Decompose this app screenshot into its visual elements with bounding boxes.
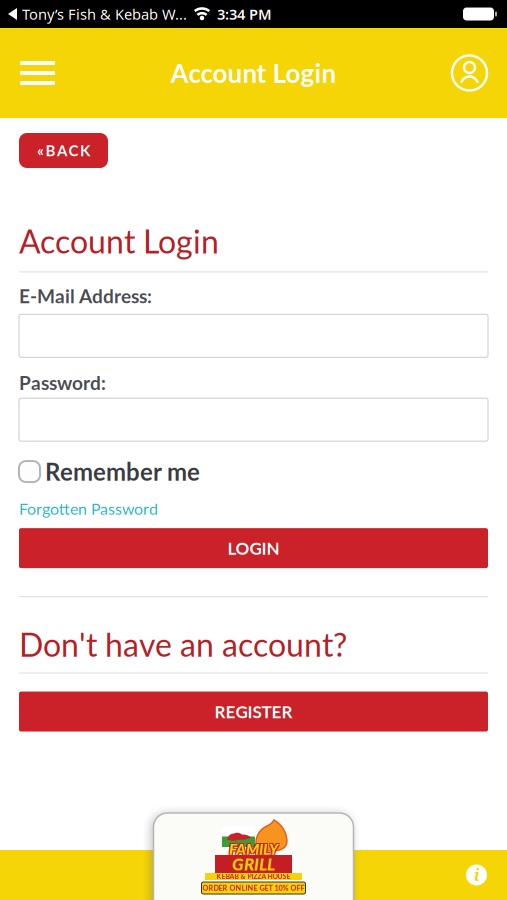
button[interactable]: Account: [451, 54, 507, 91]
staticText: Forgotten Password: [19, 499, 158, 518]
button[interactable]: E-Mail Address: [19, 314, 488, 357]
staticText: Don't have an account?: [19, 625, 347, 664]
staticText: FAMILY: [229, 840, 278, 858]
staticText: Tony’s Fish & Kebab W...: [22, 4, 187, 24]
staticText: REGISTER: [214, 701, 292, 722]
button[interactable]: Forgotten Password: [19, 499, 158, 518]
staticText: FAMILY: [228, 841, 277, 859]
button[interactable]: LOGIN: [19, 528, 488, 568]
button[interactable]: Info: [466, 864, 507, 885]
staticText: FAMILY: [230, 841, 279, 859]
staticText: LOGIN: [227, 538, 279, 558]
staticText: i: [474, 865, 479, 885]
staticText: Account Login: [19, 222, 219, 260]
staticText: GRILL: [232, 854, 275, 874]
staticText: Remember me: [45, 457, 200, 486]
staticText: Account Login: [170, 57, 336, 89]
button[interactable]: REGISTER: [19, 692, 488, 732]
button[interactable]: Remember me: [19, 457, 200, 486]
staticText: 3:34 PM: [217, 4, 272, 24]
button[interactable]: Password: [19, 398, 488, 441]
staticText: KEBAB & PIZZA HOUSE: [216, 872, 290, 880]
button[interactable]: Menu: [0, 61, 55, 85]
staticText: Password:: [19, 371, 106, 394]
staticText: ORDER ONLINE GET 10% OFF: [202, 884, 304, 892]
staticText: «BACK: [37, 141, 90, 160]
staticText: FAMILY: [228, 839, 277, 857]
staticText: E-Mail Address:: [19, 284, 152, 307]
button[interactable]: Back: [19, 133, 108, 168]
staticText: FAMILY: [230, 839, 279, 857]
